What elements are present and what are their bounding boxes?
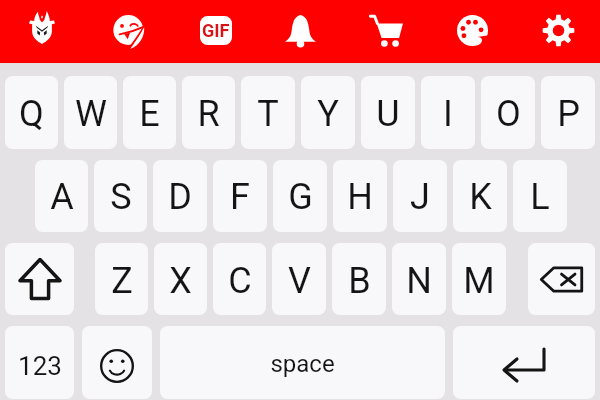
- button[interactable]: F: [213, 160, 267, 232]
- staticText: Y: [317, 93, 339, 135]
- staticText: Q: [19, 93, 44, 135]
- staticText: A: [50, 176, 74, 218]
- staticText: B: [348, 260, 371, 302]
- button[interactable]: C: [213, 243, 266, 315]
- staticText: GIF: [202, 20, 230, 41]
- button[interactable]: E: [123, 76, 176, 149]
- staticText: 123: [18, 351, 62, 381]
- button[interactable]: GIF: [170, 0, 256, 63]
- button[interactable]: B: [332, 243, 386, 315]
- button[interactable]: H: [333, 160, 387, 232]
- button[interactable]: 123: [5, 326, 74, 399]
- button[interactable]: D: [153, 160, 207, 232]
- button[interactable]: N: [392, 243, 446, 315]
- button[interactable]: P: [541, 76, 595, 149]
- staticText: U: [376, 93, 400, 135]
- button[interactable]: J: [393, 160, 447, 232]
- button[interactable]: T: [241, 76, 295, 149]
- button[interactable]: I: [421, 76, 475, 149]
- staticText: S: [110, 176, 132, 218]
- button[interactable]: Y: [301, 76, 355, 149]
- button[interactable]: Notifications: [256, 0, 342, 63]
- staticText: M: [463, 260, 495, 302]
- staticText: W: [75, 93, 107, 135]
- button[interactable]: Settings: [514, 0, 600, 63]
- button[interactable]: S: [94, 160, 147, 232]
- button[interactable]: R: [182, 76, 235, 149]
- button[interactable]: M: [452, 243, 506, 315]
- staticText: space: [270, 350, 335, 378]
- staticText: L: [530, 176, 550, 218]
- button[interactable]: Enter: [453, 326, 595, 399]
- button[interactable]: space: [160, 326, 445, 399]
- button[interactable]: Emoji: [82, 326, 152, 399]
- button[interactable]: O: [481, 76, 535, 149]
- staticText: V: [288, 260, 311, 302]
- button[interactable]: Shop: [342, 0, 428, 63]
- staticText: C: [228, 260, 252, 302]
- button[interactable]: L: [513, 160, 567, 232]
- button[interactable]: Z: [95, 243, 148, 315]
- staticText: K: [469, 176, 492, 218]
- button[interactable]: W: [64, 76, 117, 149]
- staticText: J: [410, 176, 430, 218]
- button[interactable]: X: [154, 243, 207, 315]
- button[interactable]: Q: [5, 76, 58, 149]
- button[interactable]: Shift: [5, 243, 74, 315]
- staticText: N: [406, 260, 432, 302]
- staticText: D: [168, 176, 192, 218]
- button[interactable]: G2 Esports: [0, 0, 85, 63]
- staticText: Z: [111, 260, 133, 302]
- button[interactable]: G: [273, 160, 327, 232]
- button[interactable]: U: [361, 76, 415, 149]
- staticText: F: [230, 176, 250, 218]
- staticText: X: [169, 260, 192, 302]
- button[interactable]: K: [453, 160, 507, 232]
- staticText: O: [496, 93, 521, 135]
- staticText: T: [257, 93, 279, 135]
- button[interactable]: Themes: [428, 0, 514, 63]
- staticText: E: [139, 93, 160, 135]
- button[interactable]: A: [35, 160, 88, 232]
- button[interactable]: Stickers: [85, 0, 170, 63]
- button[interactable]: V: [272, 243, 326, 315]
- staticText: R: [197, 93, 220, 135]
- staticText: G: [288, 176, 313, 218]
- button[interactable]: Backspace: [528, 243, 595, 315]
- staticText: H: [347, 176, 373, 218]
- staticText: I: [443, 93, 453, 135]
- staticText: P: [557, 93, 580, 135]
